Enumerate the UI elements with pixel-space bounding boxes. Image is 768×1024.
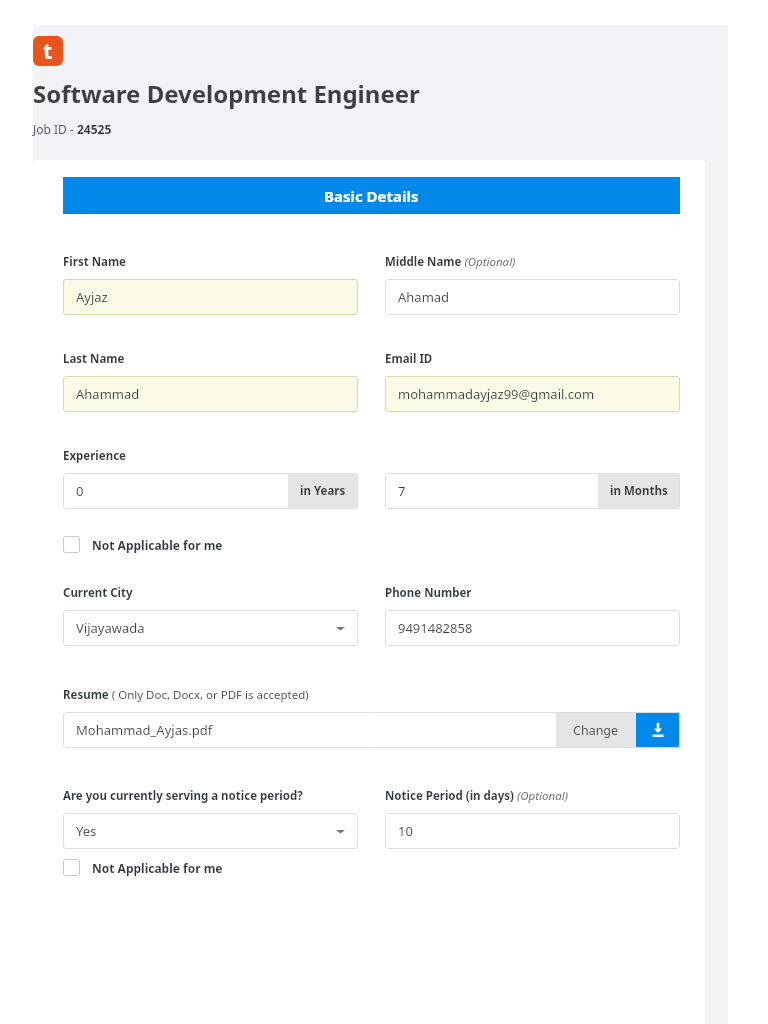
staticText: Not Applicable for me [92, 537, 223, 553]
button[interactable]: Change [556, 712, 636, 748]
staticText: Middle Name (Optional) [385, 254, 516, 270]
button[interactable]: 10 [385, 813, 680, 849]
staticText: t [43, 37, 53, 66]
button[interactable]: Vijayawada [63, 610, 358, 646]
staticText: Ahammad [76, 385, 140, 403]
staticText: mohammadayjaz99@gmail.com [398, 385, 595, 403]
staticText: Mohammad_Ayjas.pdf [76, 721, 213, 739]
button[interactable]: Yes [63, 813, 358, 849]
button[interactable]: 9491482858 [385, 610, 680, 646]
button[interactable]: Mohammad_Ayjas.pdf [63, 712, 556, 748]
button[interactable]: Ahammad [63, 376, 358, 412]
button[interactable]: Download resume [636, 712, 680, 748]
staticText: Software Development Engineer [33, 77, 420, 110]
staticText: Phone Number [385, 585, 472, 601]
staticText: First Name [63, 254, 126, 270]
button[interactable]: 0 [63, 473, 358, 509]
staticText: Change [573, 722, 619, 739]
staticText: Basic Details [324, 186, 419, 206]
staticText: Last Name [63, 351, 125, 367]
staticText: Current City [63, 585, 133, 601]
staticText: Not Applicable for me [92, 860, 223, 876]
staticText: 0 [76, 482, 84, 500]
button[interactable]: Ahamad [385, 279, 680, 315]
staticText: Ahamad [398, 288, 450, 306]
staticText: 7 [398, 482, 406, 500]
staticText: in Months [610, 483, 668, 499]
staticText: Experience [63, 448, 126, 464]
button[interactable]: Not Applicable for me [63, 534, 223, 555]
staticText: Notice Period (in days) (Optional) [385, 788, 569, 804]
staticText: 10 [398, 822, 413, 840]
staticText: Ayjaz [76, 288, 108, 306]
staticText: Job ID - 24525 [33, 121, 112, 137]
staticText: 9491482858 [398, 619, 473, 637]
button[interactable]: Ayjaz [63, 279, 358, 315]
button[interactable]: Not Applicable for me [63, 857, 223, 878]
button[interactable]: 7 [385, 473, 680, 509]
staticText: Vijayawada [76, 619, 336, 637]
button[interactable]: Basic Details [63, 177, 680, 214]
button[interactable]: Logo [33, 36, 63, 66]
staticText: Yes [76, 822, 336, 840]
staticText: Email ID [385, 351, 433, 367]
staticText: Are you currently serving a notice perio… [63, 788, 303, 804]
staticText: Resume ( Only Doc, Docx, or PDF is accep… [63, 687, 309, 703]
button[interactable]: mohammadayjaz99@gmail.com [385, 376, 680, 412]
staticText: in Years [300, 483, 346, 499]
